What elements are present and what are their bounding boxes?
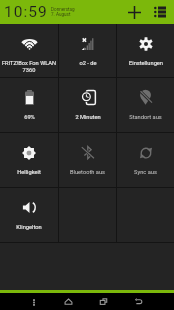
staticText: Bluetooth aus <box>70 169 105 176</box>
staticText: Einstellungen <box>129 60 163 67</box>
button[interactable]: Sync aus <box>117 133 174 187</box>
button[interactable]: Menu <box>19 293 49 310</box>
button[interactable]: Back <box>123 293 153 310</box>
button[interactable]: Recent apps <box>88 293 118 310</box>
button[interactable]: Helligkeit <box>0 133 58 187</box>
button[interactable]: Einstellungen <box>117 24 174 77</box>
staticText: Donnerstag <box>51 7 75 12</box>
staticText: 69% <box>24 114 35 121</box>
staticText: 2 Minuten <box>75 114 101 121</box>
button[interactable]: 69% <box>0 78 58 132</box>
button[interactable]: Home <box>53 293 83 310</box>
staticText: 7. August <box>51 12 71 17</box>
button[interactable]: 2 Minuten <box>59 78 116 132</box>
staticText: Klingelton <box>16 224 42 231</box>
button[interactable]: Standort aus <box>117 78 174 132</box>
button[interactable]: FRITZ!Box Fon WLAN 7360 <box>0 24 58 77</box>
staticText: 10:59 <box>4 3 48 21</box>
staticText: Standort aus <box>129 114 162 121</box>
staticText: Sync aus <box>134 169 157 176</box>
staticText: o2 - de <box>79 60 97 67</box>
staticText: FRITZ!Box Fon WLAN 7360 <box>1 60 57 74</box>
button[interactable]: o2 - de <box>59 24 116 77</box>
button[interactable]: Klingelton <box>0 188 58 242</box>
button[interactable]: Bluetooth aus <box>59 133 116 187</box>
staticText: Helligkeit <box>17 169 41 176</box>
button[interactable]: Add <box>123 1 145 23</box>
button[interactable]: List view <box>149 1 171 23</box>
